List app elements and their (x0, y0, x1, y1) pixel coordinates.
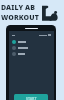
button[interactable] (9, 39, 54, 44)
staticText: START (26, 96, 37, 100)
other: Workout (41, 4, 58, 21)
button[interactable] (9, 51, 54, 56)
staticText: WORKOUT (1, 13, 39, 23)
button[interactable] (9, 45, 54, 50)
staticText: DAILY AB (1, 3, 36, 13)
button[interactable]: START (14, 94, 48, 100)
